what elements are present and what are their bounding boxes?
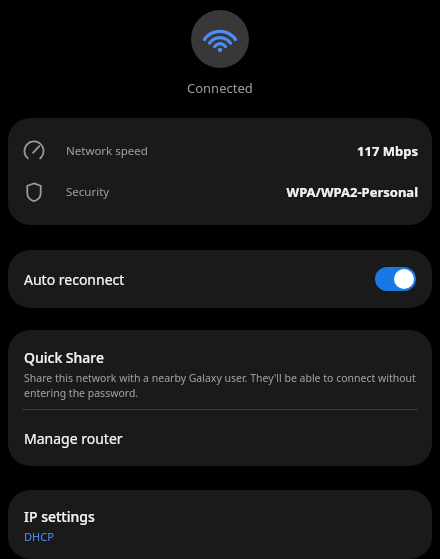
button[interactable]: Network speed <box>22 139 418 163</box>
staticText: 117 Mbps <box>357 142 418 160</box>
button[interactable]: IP settings <box>8 490 432 559</box>
staticText: Quick Share <box>24 348 105 367</box>
staticText: Security <box>66 184 110 200</box>
staticText: DHCP <box>24 529 54 544</box>
button[interactable]: Auto reconnect toggle, on <box>375 267 416 291</box>
staticText: Share this network with a nearby Galaxy … <box>24 371 418 400</box>
staticText: IP settings <box>24 507 95 526</box>
staticText: Manage router <box>24 429 123 448</box>
staticText: Auto reconnect <box>24 270 125 289</box>
staticText: WPA/WPA2-Personal <box>286 183 418 201</box>
button[interactable]: Quick Share <box>8 330 432 404</box>
other: Wi-Fi connected <box>191 10 249 68</box>
button[interactable]: Manage router <box>8 410 432 466</box>
staticText: Network speed <box>66 143 148 159</box>
button[interactable]: Security <box>22 180 418 204</box>
staticText: Connected <box>187 79 253 97</box>
button[interactable]: Auto reconnect <box>8 250 432 308</box>
